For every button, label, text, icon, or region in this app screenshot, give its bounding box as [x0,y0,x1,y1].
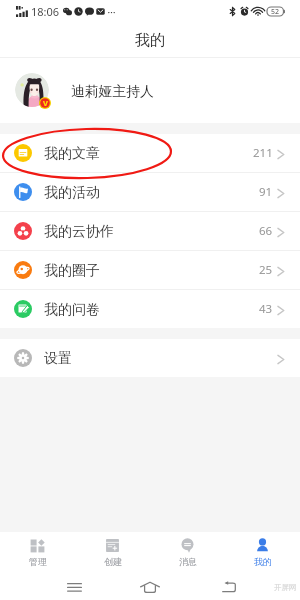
button[interactable]: 管理 [0,532,75,574]
staticText: 创建 [104,556,122,567]
staticText: 我的圈子 [44,262,100,280]
staticText: 迪莉娅主持人 [71,83,154,100]
staticText: 25 [259,262,273,278]
staticText: 开屏网 [274,583,297,592]
staticText: 91 [259,184,273,200]
staticText: 消息 [179,556,197,567]
button[interactable]: 我的问卷 [0,290,300,328]
button[interactable]: 我的文章 [0,134,300,172]
button[interactable]: 消息 [150,532,225,574]
button[interactable]: 设置 [0,339,300,377]
staticText: 我的文章 [44,145,100,163]
staticText: 我的 [135,31,165,50]
staticText: 66 [259,223,273,239]
staticText: V [43,98,48,108]
button[interactable]: 我的圈子 [0,251,300,289]
button[interactable]: 我的活动 [0,173,300,211]
other: Back [222,574,300,600]
staticText: 我的问卷 [44,301,100,319]
button[interactable]: 我的 [225,532,300,574]
staticText: 设置 [44,350,72,368]
staticText: 43 [259,301,273,317]
staticText: 我的活动 [44,184,100,202]
staticText: 52 [271,7,280,16]
button[interactable]: 我的云协作 [0,212,300,250]
button[interactable]: V [0,58,300,123]
staticText: 211 [253,145,273,161]
staticText: 我的云协作 [44,223,114,241]
other: Recent apps [67,574,300,600]
button[interactable]: 创建 [75,532,150,574]
staticText: 18:06 [31,4,60,19]
staticText: 管理 [29,556,47,567]
other: Home [0,574,300,600]
staticText: 我的 [254,556,272,567]
